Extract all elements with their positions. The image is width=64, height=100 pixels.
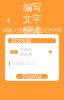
- staticText: ✦: [47, 47, 54, 57]
- staticText: 标签: [12, 47, 16, 57]
- staticText: 编写文字研读: [23, 2, 41, 36]
- button[interactable]: 开始研读: [16, 74, 48, 79]
- staticText: 在此输入正文: [12, 61, 36, 66]
- staticText: 开始研读: [22, 73, 42, 80]
- staticText: 可选内容说明: [20, 47, 32, 57]
- staticText: 请输入您想研读的文字内容: [2, 27, 62, 33]
- button[interactable]: Back: [4, 14, 14, 24]
- staticText: ‹: [7, 11, 11, 27]
- staticText: 原文标题: [11, 37, 31, 44]
